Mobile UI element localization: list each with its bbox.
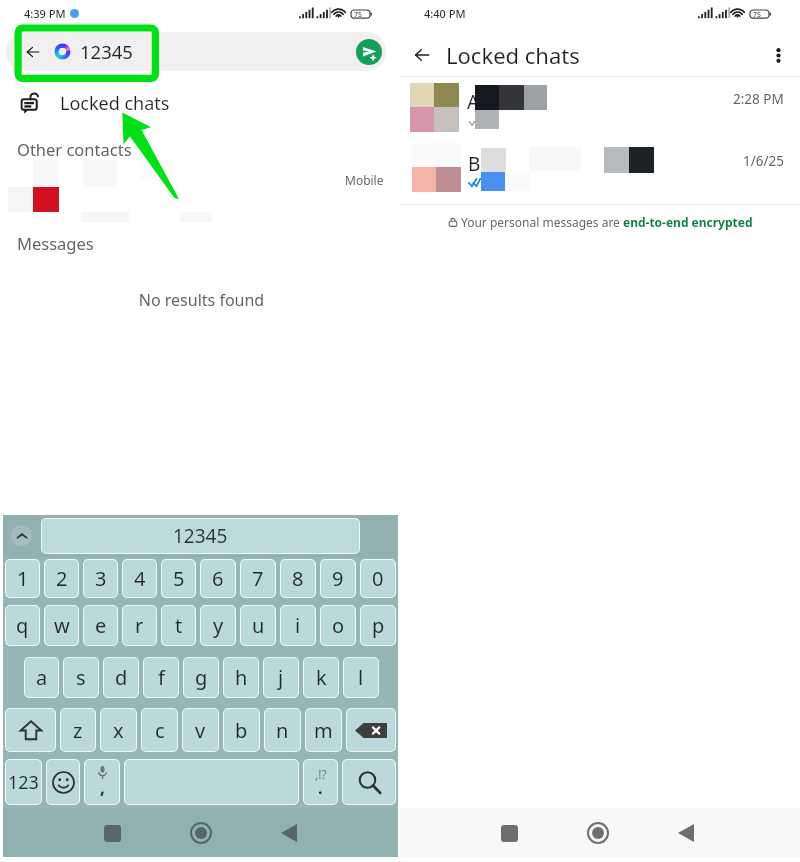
staticText: Your personal messages are [461,214,623,230]
staticText: i [295,612,301,639]
button[interactable]: o [320,605,356,646]
button[interactable]: m [305,708,342,752]
staticText: A [467,89,480,115]
button[interactable]: Collapse keyboard [11,525,32,546]
button[interactable]: 7 [240,559,276,598]
staticText: . [318,777,323,799]
staticText: 75 [753,10,762,20]
button[interactable]: v [182,708,219,752]
button[interactable]: q [5,605,40,646]
button[interactable]: Shift [5,708,56,752]
button[interactable]: k [303,657,339,698]
button[interactable]: 12345 [41,518,360,554]
button[interactable]: 6 [200,559,236,598]
button[interactable]: 1 [5,559,40,598]
staticText: B [468,151,481,177]
button[interactable]: Emoji [46,759,80,805]
button[interactable]: 12345 [6,32,386,71]
staticText: 3 [95,565,107,592]
staticText: Messages [17,232,94,254]
staticText: 6 [212,565,224,592]
button[interactable]: y [200,605,236,646]
button[interactable]: j [263,657,299,698]
staticText: 4 [134,565,146,592]
button[interactable]: ,!? [303,759,338,805]
button[interactable]: B [400,140,800,204]
staticText: m [314,717,333,744]
staticText: t [175,612,183,639]
button[interactable]: b [223,708,260,752]
button[interactable]: n [264,708,301,752]
staticText: o [332,612,345,639]
staticText: No results found [2,289,401,311]
button[interactable]: i [280,605,316,646]
button[interactable]: z [60,708,96,752]
button[interactable]: Send [356,39,382,65]
staticText: h [235,664,248,691]
staticText: Mobile [345,172,384,188]
button[interactable]: Recents [90,811,134,855]
button[interactable]: 9 [320,559,356,598]
button[interactable]: t [161,605,196,646]
staticText: Locked chats [446,40,580,70]
staticText: 5 [173,565,185,592]
button[interactable]: g [183,657,219,698]
button[interactable]: a [24,657,59,698]
staticText: 4:39 PM [24,6,66,21]
button[interactable]: Back [664,811,708,855]
button[interactable]: Locked chats [0,85,399,121]
staticText: 2 [56,565,68,592]
button[interactable]: 8 [280,559,316,598]
button[interactable]: u [240,605,276,646]
button[interactable]: s [63,657,99,698]
button[interactable]: Home [179,811,223,855]
staticText: 8 [292,565,304,592]
button[interactable]: Back [267,811,311,855]
staticText: q [16,612,29,639]
button[interactable]: Voice input [84,759,120,805]
button[interactable]: More options [758,35,798,75]
staticText: 0 [372,565,384,592]
staticText: j [278,664,284,691]
button[interactable]: 4 [122,559,157,598]
staticText: 2:28 PM [733,90,784,108]
button[interactable]: 123 [5,759,42,805]
button[interactable]: 5 [161,559,196,598]
button[interactable]: l [343,657,379,698]
button[interactable]: A [400,77,800,145]
staticText: 1/6/25 [743,152,784,170]
button[interactable]: x [100,708,137,752]
staticText: u [252,612,265,639]
button[interactable]: d [103,657,139,698]
button[interactable]: w [44,605,79,646]
button[interactable]: Backspace [346,708,396,752]
button[interactable]: 2 [44,559,79,598]
staticText: 123 [8,770,39,795]
staticText: r [135,612,144,639]
button[interactable]: f [143,657,179,698]
staticText: end-to-end encrypted [623,214,753,230]
button[interactable]: h [223,657,259,698]
button[interactable]: Search [342,759,396,805]
button[interactable]: p [360,605,396,646]
button[interactable]: Home [576,811,620,855]
staticText: x [113,717,124,744]
button[interactable]: c [141,708,178,752]
button[interactable]: 3 [83,559,118,598]
button[interactable]: e [83,605,118,646]
staticText: 4:40 PM [424,6,466,21]
staticText: z [73,717,83,744]
staticText: v [195,717,206,744]
staticText: s [76,664,86,691]
button[interactable]: Back [402,35,442,75]
button[interactable]: r [122,605,157,646]
staticText: 75 [354,10,363,20]
staticText: ,!? [315,766,327,782]
button[interactable]: Space [124,759,299,805]
button[interactable]: 0 [360,559,396,598]
staticText: , [100,776,105,799]
staticText: e [95,612,107,639]
staticText: Locked chats [60,91,170,116]
button[interactable]: Recents [487,811,531,855]
staticText: l [358,664,364,691]
